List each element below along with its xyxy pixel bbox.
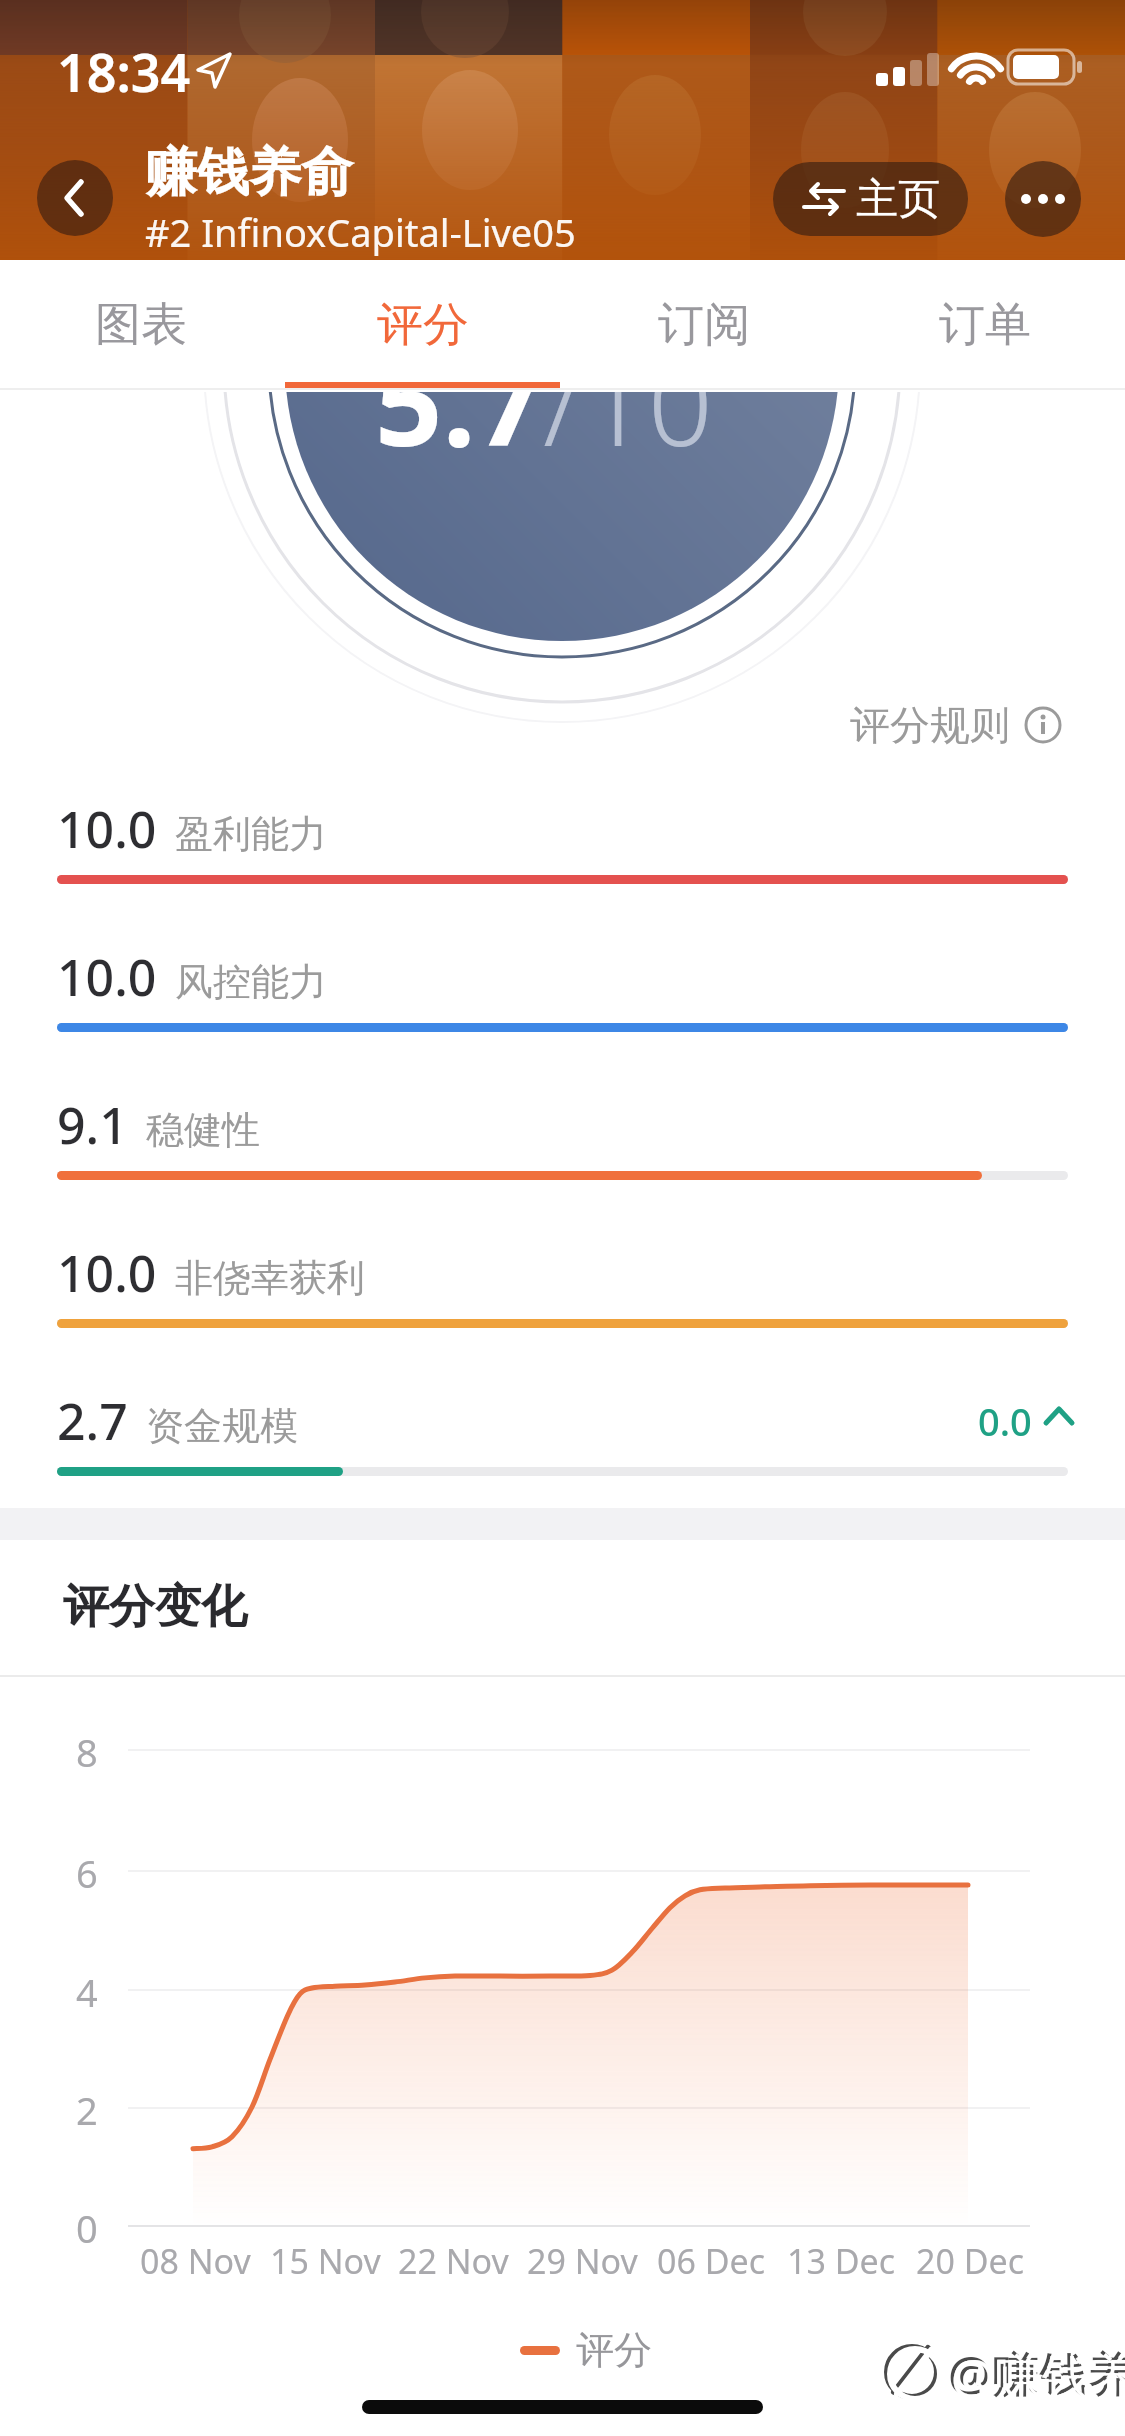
staticText: 20 Dec <box>916 2238 1025 2284</box>
button[interactable] <box>37 160 113 236</box>
staticText: @赚钱养俞 <box>951 2343 1125 2409</box>
button[interactable] <box>1005 161 1081 237</box>
staticText: 10.0 <box>57 795 157 863</box>
button[interactable]: 2.7 <box>0 1387 1125 1535</box>
staticText: 2 <box>76 2084 98 2136</box>
button[interactable]: 评分 <box>282 260 563 390</box>
staticText: 评分 <box>576 2326 652 2374</box>
staticText: 29 Nov <box>527 2238 638 2284</box>
staticText: #2 InfinoxCapital-Live05 <box>145 206 576 258</box>
staticText: 4 <box>76 1966 98 2018</box>
staticText: 6 <box>76 1847 98 1899</box>
staticText: 8 <box>76 1726 98 1778</box>
button[interactable]: 评分 <box>520 2326 652 2374</box>
button[interactable]: 订阅 <box>563 260 844 390</box>
staticText: 2.7 <box>57 1387 128 1455</box>
staticText: 08 Nov <box>140 2238 251 2284</box>
staticText: 06 Dec <box>657 2238 766 2284</box>
staticText: 稳健性 <box>146 1106 260 1154</box>
staticText: 订阅 <box>658 296 750 354</box>
button[interactable]: 9.1 <box>0 1091 1125 1239</box>
staticText: 10.0 <box>57 1239 157 1307</box>
staticText: 评分规则 <box>850 700 1010 750</box>
button[interactable]: 评分规则 <box>850 700 1062 750</box>
staticText: 评分变化 <box>63 1578 247 1636</box>
button[interactable]: 10.0 <box>0 943 1125 1091</box>
staticText: 9.1 <box>57 1091 128 1159</box>
staticText: 0 <box>76 2202 98 2254</box>
button[interactable]: 10.0 <box>0 795 1125 943</box>
staticText: 赚钱养俞 <box>145 140 353 206</box>
staticText: @赚钱养俞 <box>948 2340 1125 2406</box>
button[interactable]: 主页 <box>773 162 968 236</box>
staticText: 评分 <box>377 296 469 354</box>
staticText: 10.0 <box>57 943 157 1011</box>
staticText: 风控能力 <box>175 958 327 1006</box>
staticText: 资金规模 <box>146 1402 298 1450</box>
button[interactable]: 10.0 <box>0 1239 1125 1387</box>
staticText: 18:34 <box>57 36 191 107</box>
staticText: 22 Nov <box>398 2238 509 2284</box>
staticText: 15 Nov <box>270 2238 381 2284</box>
staticText: 非侥幸获利 <box>175 1254 365 1302</box>
staticText: 主页 <box>856 173 940 226</box>
staticText: 5.7/10 <box>375 392 713 481</box>
staticText: 盈利能力 <box>175 810 327 858</box>
staticText: 订单 <box>939 296 1031 354</box>
button[interactable]: 订单 <box>844 260 1125 390</box>
button[interactable]: 图表 <box>0 260 282 390</box>
staticText: 图表 <box>95 296 187 354</box>
staticText: 0.0 <box>978 1395 1032 1447</box>
staticText: 13 Dec <box>787 2238 896 2284</box>
